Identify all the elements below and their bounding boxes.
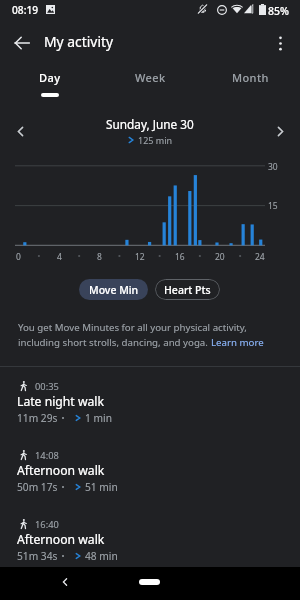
staticText: 50m 17s <box>17 480 58 494</box>
staticText: Late night walk <box>17 393 105 410</box>
staticText: 14:08 <box>35 449 59 462</box>
button[interactable]: Previous day <box>6 117 34 145</box>
staticText: My activity <box>44 32 114 51</box>
staticText: Afternoon walk <box>17 531 105 548</box>
staticText: Day <box>39 70 61 85</box>
staticText: Sunday, June 30 <box>106 116 194 132</box>
staticText: 00:35 <box>35 380 59 393</box>
staticText: Heart Pts <box>164 283 211 297</box>
staticText: You get Move Minutes for all your physic… <box>18 321 247 334</box>
staticText: Afternoon walk <box>17 462 105 479</box>
button[interactable]: Back <box>6 27 38 59</box>
staticText: 15 <box>268 200 278 212</box>
button[interactable]: 16:40 <box>0 511 300 580</box>
staticText: Move Min <box>89 283 139 297</box>
staticText: 30 <box>268 161 278 173</box>
staticText: 08:19 <box>12 3 39 17</box>
staticText: 51 min <box>85 480 118 494</box>
staticText: 20 <box>215 251 225 263</box>
staticText: 4 <box>57 251 62 263</box>
staticText: 12 <box>135 251 145 263</box>
staticText: 16:40 <box>35 518 59 531</box>
button[interactable]: Day <box>0 64 100 98</box>
staticText: 24 <box>255 251 265 263</box>
button[interactable]: Move Min <box>79 279 148 300</box>
staticText: including short strolls, dancing, and yo… <box>18 336 211 349</box>
staticText: 125 min <box>138 134 173 146</box>
button[interactable]: Week <box>100 64 200 98</box>
staticText: Week <box>135 70 166 85</box>
button[interactable]: Heart Pts <box>155 279 220 300</box>
staticText: Month <box>232 70 269 85</box>
staticText: 0 <box>16 251 21 263</box>
button[interactable]: Month <box>200 64 300 98</box>
staticText: 51m 34s <box>17 549 58 563</box>
button[interactable]: More options <box>264 27 296 59</box>
staticText: 85% <box>268 4 289 18</box>
button[interactable]: 14:08 <box>0 442 300 511</box>
button[interactable]: Home <box>139 579 160 585</box>
staticText: 8 <box>97 251 102 263</box>
button[interactable]: Next day <box>266 117 294 145</box>
button[interactable]: 00:35 <box>0 373 300 442</box>
staticText: 48 min <box>85 549 118 563</box>
button[interactable]: Back <box>53 570 77 594</box>
button[interactable]: Learn more <box>211 336 264 349</box>
staticText: 1 min <box>85 411 112 425</box>
staticText: 16 <box>175 251 185 263</box>
staticText: 11m 29s <box>17 411 58 425</box>
